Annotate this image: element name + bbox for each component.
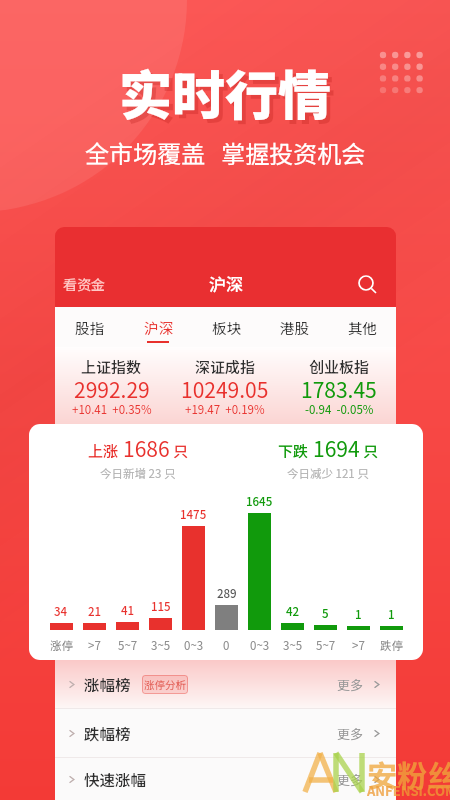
staticText: 115 xyxy=(151,598,171,615)
staticText: 今日减少 121 只 xyxy=(287,465,369,482)
staticText: 41 xyxy=(121,602,135,619)
button[interactable]: 板块 xyxy=(192,307,260,347)
button[interactable]: 股指 xyxy=(55,307,124,347)
staticText: 创业板指 xyxy=(309,356,370,378)
staticText: 21 xyxy=(88,603,102,620)
staticText: +10.41 +0.35% xyxy=(72,401,152,418)
button[interactable]: 快速涨幅 xyxy=(55,758,396,800)
staticText: 涨幅榜 xyxy=(84,673,131,695)
staticText: 更多 xyxy=(337,770,364,789)
button[interactable]: 沪深 xyxy=(124,307,192,347)
button[interactable]: Search xyxy=(355,271,385,301)
staticText: 更多 xyxy=(337,675,364,694)
staticText: 1645 xyxy=(246,493,273,510)
staticText: 跌幅榜 xyxy=(84,722,131,744)
staticText: 实时行情 xyxy=(123,58,335,135)
staticText: 5~7 xyxy=(118,637,138,654)
staticText: 0~3 xyxy=(184,637,204,654)
staticText: 3~5 xyxy=(151,637,171,654)
staticText: 3~5 xyxy=(283,637,303,654)
staticText: 10249.05 xyxy=(181,374,269,404)
staticText: 更多 xyxy=(337,724,364,743)
staticText: 289 xyxy=(217,585,237,602)
staticText: 1686 xyxy=(123,433,170,463)
button[interactable]: 涨幅榜 xyxy=(55,660,396,708)
staticText: 安粉丝 xyxy=(367,752,450,795)
staticText: >7 xyxy=(88,637,101,654)
staticText: 1475 xyxy=(180,506,207,523)
staticText: 5 xyxy=(322,605,329,622)
staticText: >7 xyxy=(352,637,365,654)
staticText: 42 xyxy=(286,603,300,620)
button[interactable]: 跌幅榜 xyxy=(55,709,396,757)
staticText: 今日新增 23 只 xyxy=(100,465,176,482)
button[interactable]: 看资金 xyxy=(63,274,105,294)
staticText: 2992.29 xyxy=(74,374,150,404)
staticText: 34 xyxy=(54,603,68,620)
staticText: 快速涨幅 xyxy=(84,768,147,790)
staticText: 其他 xyxy=(348,317,377,338)
staticText: 只 xyxy=(363,440,379,462)
staticText: 涨停分析 xyxy=(144,677,186,692)
staticText: 深证成指 xyxy=(195,356,256,378)
staticText: ANFENSI.COM xyxy=(367,781,450,800)
staticText: 1694 xyxy=(313,433,360,463)
staticText: 上涨 xyxy=(88,440,119,462)
staticText: 股指 xyxy=(75,317,104,338)
staticText: 0~3 xyxy=(250,637,270,654)
staticText: -0.94 -0.05% xyxy=(305,401,374,418)
staticText: 板块 xyxy=(212,317,241,338)
staticText: 1 xyxy=(388,606,395,623)
staticText: 1 xyxy=(355,606,362,623)
staticText: 港股 xyxy=(280,317,309,338)
staticText: 沪深 xyxy=(144,317,173,338)
button[interactable]: 其他 xyxy=(328,307,396,347)
staticText: 沪深 xyxy=(209,271,243,296)
staticText: 上证指数 xyxy=(81,356,142,378)
staticText: 跌停 xyxy=(380,637,403,654)
staticText: 5~7 xyxy=(316,637,336,654)
staticText: +19.47 +0.19% xyxy=(185,401,265,418)
staticText: 1783.45 xyxy=(301,374,377,404)
staticText: 全市场覆盖 掌握投资机会 xyxy=(85,135,366,170)
staticText: 涨停 xyxy=(50,637,73,654)
staticText: 只 xyxy=(173,440,189,462)
staticText: 0 xyxy=(223,637,230,654)
staticText: 实时行情 xyxy=(119,54,331,131)
button[interactable]: 港股 xyxy=(260,307,328,347)
staticText: 下跌 xyxy=(278,440,309,462)
